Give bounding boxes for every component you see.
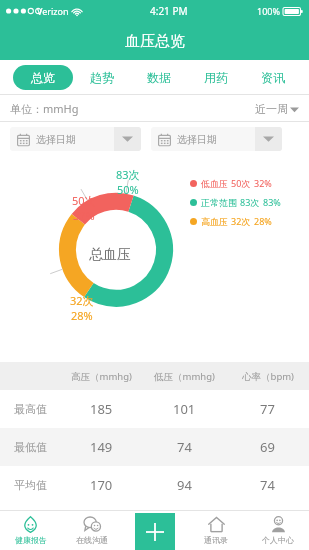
staticText: 185: [90, 400, 113, 418]
staticText: 近一周: [255, 102, 288, 116]
staticText: 50次: [72, 193, 96, 208]
staticText: 101: [173, 400, 196, 418]
staticText: 50次: [231, 177, 251, 189]
staticText: 32次: [231, 215, 251, 227]
staticText: 69: [260, 438, 275, 456]
staticText: 数据: [147, 70, 171, 85]
button[interactable]: 通讯录: [185, 510, 247, 550]
staticText: 高血压: [201, 216, 228, 227]
staticText: 通讯录: [204, 535, 228, 545]
button[interactable]: 选择日期: [151, 127, 282, 151]
staticText: 28%: [71, 308, 93, 323]
staticText: 77: [260, 400, 275, 418]
button[interactable]: 用药: [187, 60, 244, 95]
staticText: 正常范围: [201, 197, 237, 208]
button[interactable]: 数据: [130, 60, 187, 95]
button[interactable]: 在线沟通: [61, 510, 123, 550]
staticText: 170: [90, 476, 113, 494]
staticText: 32%: [254, 177, 272, 189]
staticText: 高压（mmhg): [71, 370, 132, 383]
staticText: 低血压: [201, 178, 228, 189]
staticText: 单位：mmHg: [10, 101, 79, 116]
staticText: 50%: [117, 182, 139, 197]
staticText: 74: [260, 476, 275, 494]
staticText: 74: [177, 438, 192, 456]
staticText: 100%: [257, 5, 280, 17]
staticText: 低压（mmhg): [154, 370, 215, 383]
staticText: 资讯: [261, 70, 285, 85]
button[interactable]: 健康报告: [0, 510, 61, 550]
staticText: 在线沟通: [76, 535, 108, 545]
staticText: 32次: [70, 293, 94, 308]
staticText: 选择日期: [36, 133, 76, 146]
button[interactable]: 个人中心: [247, 510, 309, 550]
staticText: 个人中心: [262, 535, 294, 545]
staticText: 总览: [31, 70, 55, 85]
staticText: 用药: [204, 70, 228, 85]
staticText: 健康报告: [15, 535, 47, 545]
button[interactable]: 总览: [13, 65, 73, 90]
staticText: 83次: [116, 167, 140, 182]
staticText: 149: [90, 438, 113, 456]
button[interactable]: 趋势: [73, 60, 130, 95]
staticText: 83%: [263, 196, 281, 208]
button[interactable]: Add: [135, 513, 175, 550]
staticText: 94: [177, 476, 192, 494]
staticText: Verizon: [37, 5, 69, 17]
staticText: 血压总览: [125, 32, 185, 51]
staticText: 平均值: [14, 478, 47, 492]
staticText: 最高值: [14, 402, 47, 416]
staticText: 心率（bpm): [242, 370, 294, 383]
button[interactable]: 近一周: [255, 102, 299, 116]
staticText: 选择日期: [177, 133, 217, 146]
button[interactable]: 选择日期: [10, 127, 141, 151]
staticText: 总血压: [89, 246, 131, 264]
staticText: 4:21 PM: [150, 4, 188, 18]
staticText: 最低值: [14, 440, 47, 454]
staticText: 28%: [254, 215, 272, 227]
staticText: 趋势: [90, 70, 114, 85]
staticText: 83次: [240, 196, 260, 208]
button[interactable]: 资讯: [244, 60, 301, 95]
staticText: 32%: [73, 208, 95, 223]
